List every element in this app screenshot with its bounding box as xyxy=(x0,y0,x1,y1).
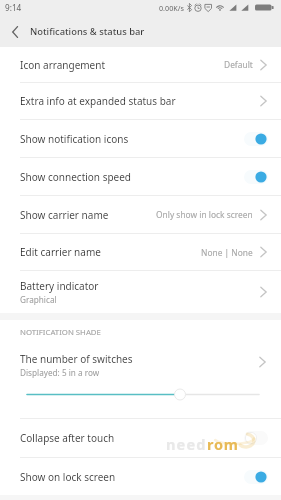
staticText: Graphical xyxy=(20,294,57,305)
staticText: Edit carrier name xyxy=(20,245,101,259)
staticText: Show carrier name xyxy=(20,208,109,222)
staticText: Extra info at expanded status bar xyxy=(20,94,176,108)
button[interactable]: Extra info at expanded status bar xyxy=(0,83,281,119)
staticText: Show notification icons xyxy=(20,132,129,146)
staticText: need xyxy=(166,434,207,454)
staticText: The number of switches xyxy=(20,352,133,366)
staticText: 9:14 xyxy=(5,2,22,13)
staticText: Only show in lock screen xyxy=(156,209,253,220)
button[interactable]: Edit carrier name xyxy=(0,234,281,270)
staticText: Icon arrangement xyxy=(20,58,106,72)
staticText: Collapse after touch xyxy=(20,431,115,445)
staticText: Show on lock screen xyxy=(20,470,116,484)
staticText: Displayed: 5 in a row xyxy=(20,367,100,378)
staticText: Default xyxy=(224,59,253,70)
staticText: NOTIFICATION SHADE xyxy=(20,327,101,338)
other: Show connection speed, on xyxy=(244,170,268,184)
staticText: Notifications & status bar xyxy=(30,25,145,38)
button[interactable]: Show carrier name xyxy=(0,196,281,233)
staticText: Battery indicator xyxy=(20,279,99,293)
button[interactable]: Collapse after touch xyxy=(0,419,281,457)
other: Show notification icons, on xyxy=(244,132,268,146)
button[interactable]: The number of switches xyxy=(0,345,281,418)
button[interactable]: Icon arrangement xyxy=(0,47,281,82)
button[interactable]: Show connection speed xyxy=(0,158,281,195)
other: Show on lock screen, on xyxy=(244,470,268,484)
staticText: rom xyxy=(207,434,239,454)
staticText: 0.00K/s xyxy=(159,3,184,13)
button[interactable]: Show on lock screen xyxy=(0,458,281,495)
button[interactable]: Battery indicator xyxy=(0,271,281,313)
staticText: Show connection speed xyxy=(20,170,132,184)
button[interactable]: Show notification icons xyxy=(0,120,281,157)
staticText: None | None xyxy=(201,247,253,258)
button[interactable]: Back xyxy=(0,16,30,47)
other: Collapse after touch, off xyxy=(244,431,268,445)
